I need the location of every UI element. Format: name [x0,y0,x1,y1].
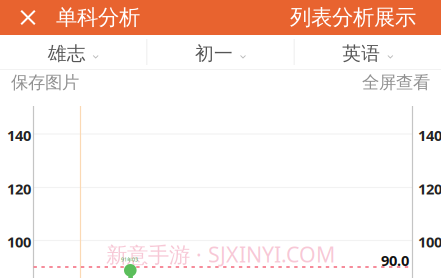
button[interactable]: 保存图片 [0,70,79,95]
staticText: 初一 [195,42,233,65]
button[interactable]: Close [0,0,46,35]
staticText: 英语 [342,42,380,65]
staticText: 120 [418,179,441,198]
staticText: 100 [7,232,31,251]
staticText: 120 [7,179,31,198]
staticText: 100 [418,232,441,251]
staticText: 91年03 [121,256,138,263]
staticText: 全屏查看 [362,72,430,93]
staticText: 保存图片 [11,72,79,93]
button[interactable]: 初一 [147,35,294,69]
staticText: 新意手游 · SJXINYI.COM [106,240,335,268]
staticText: 90.0 [381,250,409,270]
button[interactable]: 列表分析展示 [276,0,441,35]
staticText: 列表分析展示 [290,4,416,31]
staticText: 140 [7,125,31,145]
button[interactable]: 全屏查看 [362,70,441,95]
staticText: 140 [418,125,441,145]
staticText: 单科分析 [56,4,140,31]
staticText: 雄志 [48,42,86,65]
button[interactable]: 英语 [295,35,441,69]
button[interactable]: 雄志 [0,35,146,69]
